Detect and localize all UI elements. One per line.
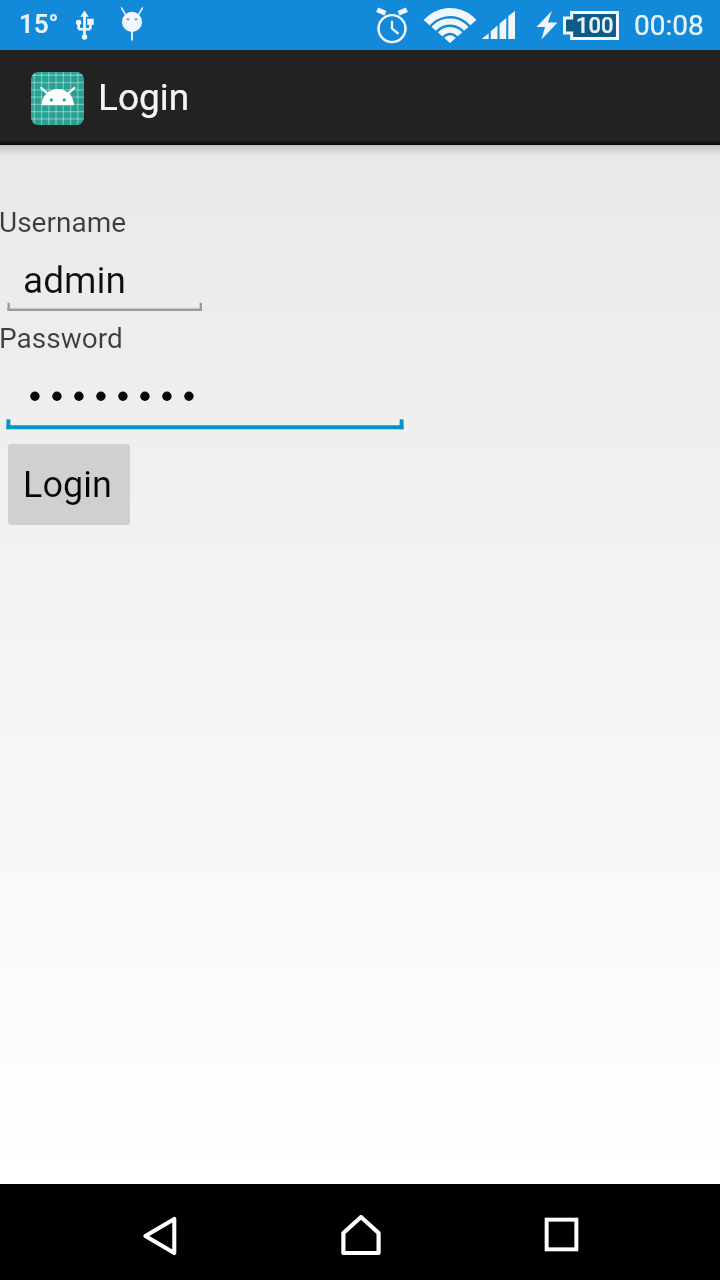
button[interactable] bbox=[0, 245, 206, 311]
button[interactable]: Back bbox=[60, 1184, 260, 1280]
staticText: 00:08 bbox=[634, 9, 704, 42]
staticText: 15° bbox=[19, 9, 59, 39]
staticText: Username bbox=[0, 206, 127, 239]
staticText: admin bbox=[23, 259, 126, 302]
staticText: Login bbox=[23, 464, 112, 506]
button[interactable]: Home bbox=[260, 1184, 460, 1280]
button[interactable]: Recents bbox=[461, 1184, 661, 1280]
staticText: Password bbox=[0, 322, 123, 355]
staticText: 100 bbox=[576, 13, 614, 39]
button[interactable] bbox=[0, 365, 404, 433]
staticText: Login bbox=[98, 76, 190, 119]
button[interactable]: Login bbox=[8, 444, 130, 525]
